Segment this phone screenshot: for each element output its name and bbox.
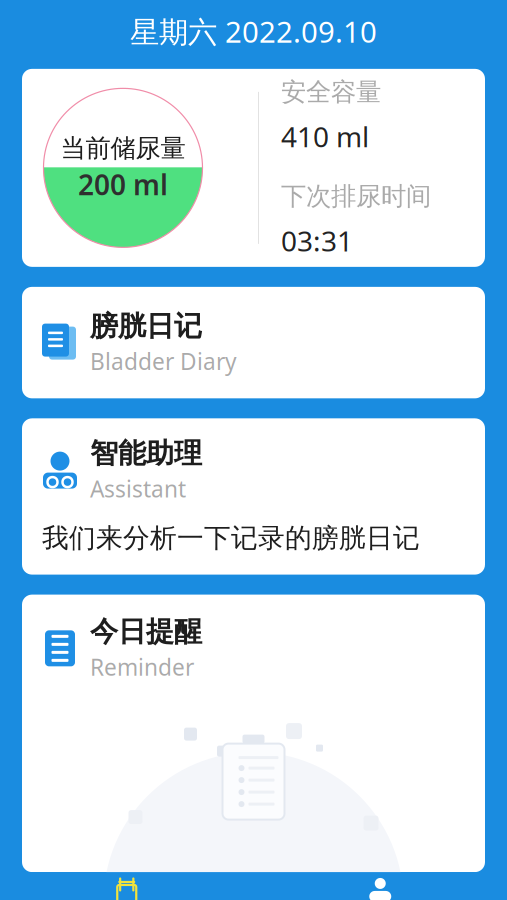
staticText: Assistant [90,474,186,504]
staticText: 410 ml [281,118,369,155]
staticText: Reminder [90,652,194,682]
staticText: 当前储尿量 [60,133,185,164]
staticText: 03:31 [281,222,353,259]
staticText: 膀胱日记 [90,309,202,343]
staticText: 安全容量 [281,77,381,108]
staticText: 下次排尿时间 [281,181,431,212]
button[interactable]: 我的 [253,872,507,900]
button[interactable]: 智能助理 [22,418,485,575]
staticText: 我们来分析一下记录的膀胱日记 [42,522,420,555]
staticText: 智能助理 [90,436,202,471]
staticText: 星期六 2022.09.10 [130,12,377,51]
button[interactable]: 首页 [0,871,253,900]
staticText: Bladder Diary [90,346,237,376]
staticText: 200 ml [78,166,168,203]
button[interactable]: 膀胱日记 [22,287,485,398]
staticText: 今日提醒 [90,615,202,649]
